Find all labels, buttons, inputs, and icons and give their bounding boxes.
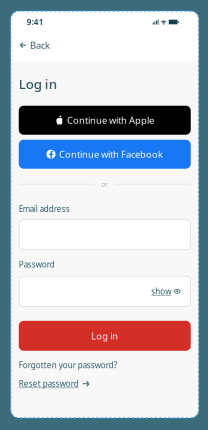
button[interactable]: Back bbox=[11, 39, 50, 51]
staticText: Continue with Facebook bbox=[59, 148, 163, 160]
staticText: Log in bbox=[19, 75, 57, 93]
button[interactable]: Continue with Facebook bbox=[19, 140, 191, 169]
button[interactable]: Log in bbox=[19, 321, 191, 351]
button[interactable]: Show password bbox=[151, 286, 191, 297]
staticText: Continue with Apple bbox=[67, 114, 154, 126]
staticText: show bbox=[151, 286, 171, 297]
staticText: Reset password bbox=[19, 378, 79, 389]
staticText: 9:41 bbox=[27, 17, 44, 27]
staticText: or bbox=[101, 180, 108, 189]
staticText: Email address bbox=[19, 204, 70, 214]
button[interactable]: Reset password bbox=[19, 378, 90, 389]
staticText: Password bbox=[19, 259, 55, 270]
staticText: Forgotten your password? bbox=[19, 360, 117, 370]
staticText: Log in bbox=[91, 330, 118, 342]
button[interactable]: Continue with Apple bbox=[19, 106, 191, 135]
staticText: Back bbox=[30, 39, 50, 51]
